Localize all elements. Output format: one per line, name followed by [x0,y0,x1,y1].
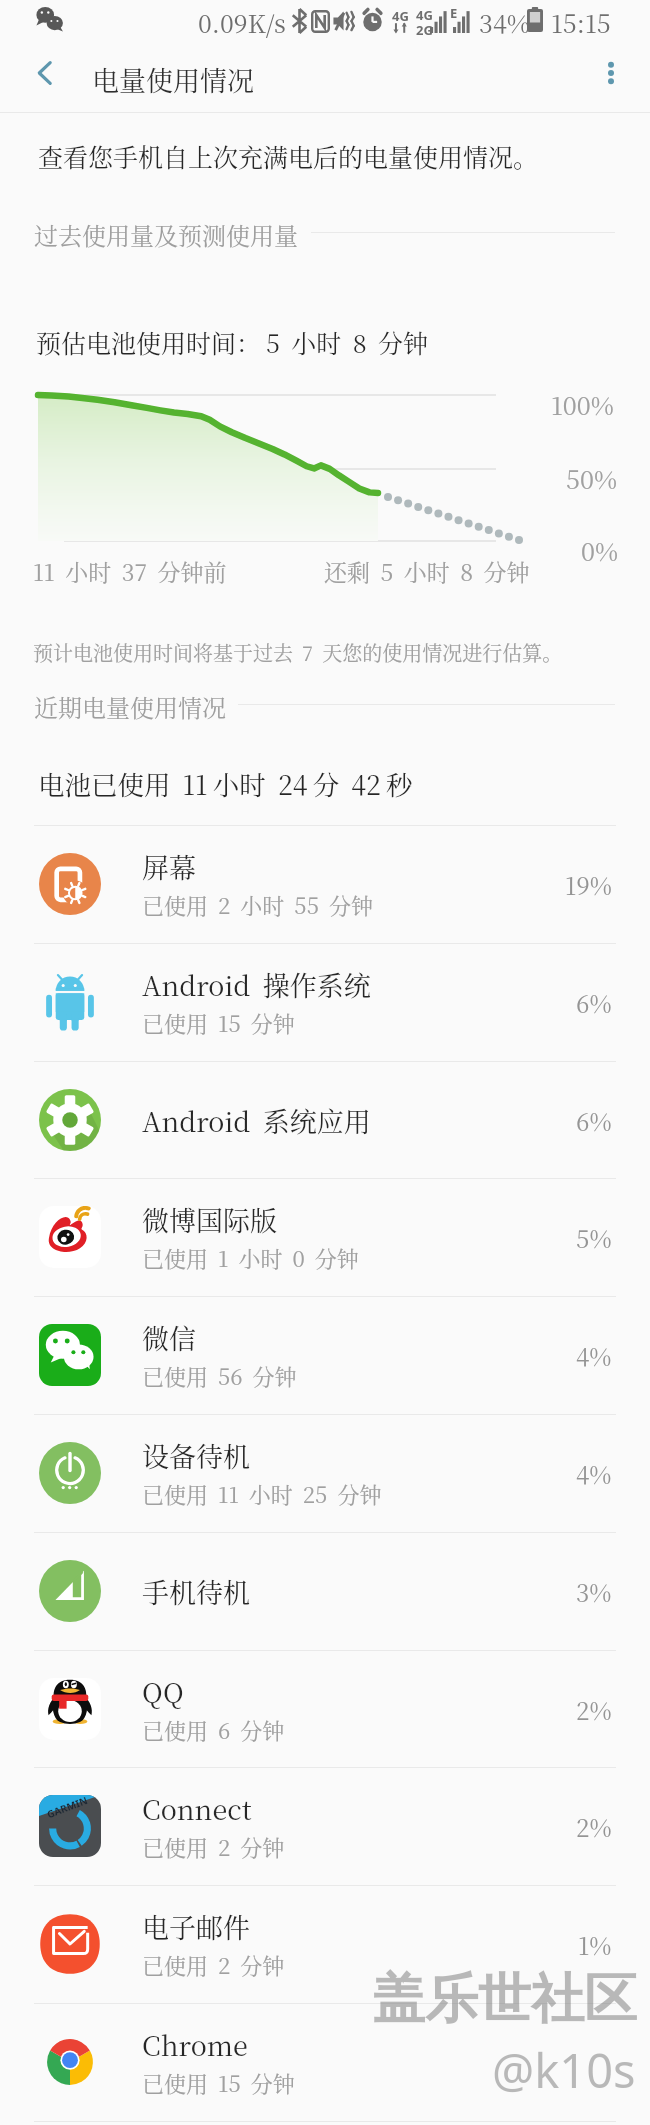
staticText: 2% [576,1692,612,1726]
staticText: Chrome [142,2025,248,2064]
staticText: 11 小时 37 分钟前 [33,555,227,588]
staticText: 盖乐世社区 [372,1966,637,2033]
button[interactable]: 手机待机 [0,1532,650,1650]
staticText: 电池已使用 11 小时 24 分 42 秒 [38,764,413,802]
staticText: GARMIN [45,1795,90,1821]
staticText: 设备待机 [142,1436,250,1475]
staticText: 5% [576,1220,612,1254]
staticText: 近期电量使用情况 [34,689,226,723]
button[interactable]: 微博国际版 [0,1178,650,1296]
staticText: 电量使用情况 [92,60,254,99]
staticText: 4G [416,6,433,24]
button[interactable]: More options [584,46,638,100]
button[interactable]: QQ [0,1650,650,1768]
staticText: Connect [142,1789,252,1828]
staticText: 19% [565,867,612,901]
staticText: 已使用 15 分钟 [142,2067,295,2099]
staticText: 微博国际版 [142,1200,277,1239]
staticText: QQ [142,1672,184,1711]
button[interactable]: Back [18,46,72,100]
staticText: 手机待机 [142,1572,250,1611]
staticText: 0.09K/s [198,4,286,40]
staticText: 6% [576,1103,612,1137]
staticText: 1% [578,1927,612,1961]
button[interactable]: GARMIN [0,1767,650,1885]
staticText: 4% [576,1338,612,1372]
staticText: @k10s [492,2038,636,2102]
staticText: 已使用 1 小时 0 分钟 [142,1242,359,1274]
staticText: E [450,4,458,22]
button[interactable]: Chrome [0,2003,650,2121]
staticText: 4% [576,1456,612,1490]
staticText: 6% [576,985,612,1019]
staticText: Android 操作系统 [142,965,371,1004]
staticText: 已使用 2 小时 55 分钟 [142,889,373,921]
staticText: 还剩 5 小时 8 分钟 [324,555,530,588]
staticText: 2% [576,1809,612,1843]
staticText: 100% [551,386,614,422]
staticText: 已使用 56 分钟 [142,1360,297,1392]
button[interactable]: Android 系统应用 [0,1061,650,1179]
button[interactable]: Android 操作系统 [0,943,650,1061]
staticText: 3% [576,1574,612,1608]
staticText: 电子邮件 [142,1907,250,1946]
staticText: 预计电池使用时间将基于过去 7 天您的使用情况进行估算。 [33,638,563,667]
staticText: 0% [581,532,619,568]
button[interactable]: 屏幕 [0,825,650,943]
button[interactable]: 微信 [0,1296,650,1414]
staticText: 已使用 11 小时 25 分钟 [142,1478,382,1510]
staticText: 15:15 [551,4,611,40]
button[interactable]: 设备待机 [0,1414,650,1532]
staticText: 50% [566,460,617,496]
button[interactable]: 电子邮件 [0,1885,650,2003]
staticText: 查看您手机自上次充满电后的电量使用情况。 [38,138,539,174]
staticText: 已使用 15 分钟 [142,1007,295,1039]
staticText: 2G [416,21,433,39]
staticText: 已使用 2 分钟 [142,1949,285,1981]
staticText: 34% [479,4,530,40]
staticText: 预估电池使用时间： 5 小时 8 分钟 [36,324,429,360]
staticText: 微信 [142,1318,196,1357]
staticText: 过去使用量及预测使用量 [34,217,298,251]
staticText: Android 系统应用 [142,1101,371,1140]
staticText: 已使用 2 分钟 [142,1831,285,1863]
staticText: 屏幕 [142,847,196,886]
staticText: 4G [392,7,409,25]
staticText: 已使用 6 分钟 [142,1714,285,1746]
